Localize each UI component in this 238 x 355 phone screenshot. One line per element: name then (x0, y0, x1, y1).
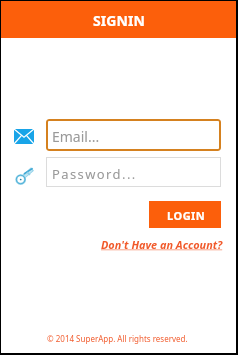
staticText: Don't Have an Account? (101, 237, 223, 252)
button[interactable]: Password (14, 162, 34, 182)
staticText: LOGIN (167, 208, 206, 223)
staticText: Password... (52, 165, 137, 183)
button[interactable]: Don't Have an Account? (101, 237, 223, 252)
button[interactable]: Email (14, 127, 34, 143)
staticText: SIGNIN (93, 11, 146, 30)
staticText: Email... (52, 127, 100, 146)
staticText: © 2014 SuperApp. All rights reserved. (47, 333, 188, 344)
button[interactable]: Password... (46, 157, 221, 187)
button[interactable]: LOGIN (149, 201, 221, 228)
button[interactable]: Email... (46, 119, 221, 151)
